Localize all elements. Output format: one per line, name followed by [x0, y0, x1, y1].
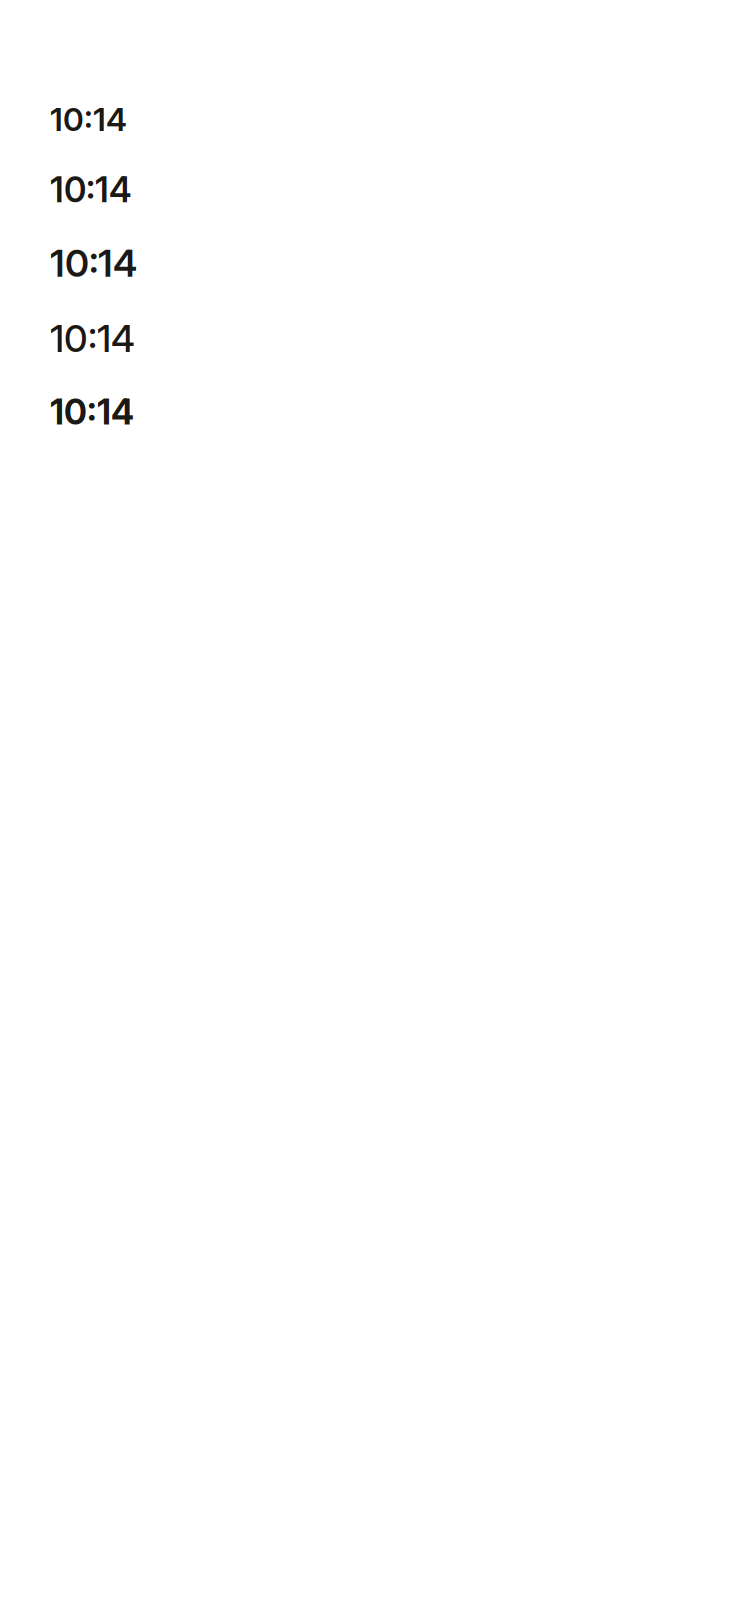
- staticText: 10:14: [50, 391, 134, 433]
- staticText: 10:14: [50, 241, 137, 286]
- staticText: 10:14: [50, 100, 127, 139]
- staticText: 10:14: [50, 316, 135, 361]
- staticText: 10:14: [50, 169, 132, 211]
